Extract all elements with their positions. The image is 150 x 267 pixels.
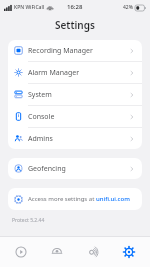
staticText: Alarm Manager [28,68,129,78]
staticText: unifi.ui.com [96,195,130,203]
staticText: Geofencing [28,164,129,174]
staticText: Settings [55,18,95,32]
button[interactable]: Alarm Manager [8,62,142,83]
button[interactable]: Recording Manager [8,40,142,61]
staticText: 16:28 [67,3,83,11]
button[interactable]: Live view [6,237,36,267]
staticText: System [28,90,129,100]
staticText: Access more settings at [28,195,96,203]
staticText: Recording Manager [28,46,129,56]
staticText: KPN WiFiCall [14,4,45,11]
staticText: Admins [28,134,129,144]
staticText: 42% [123,4,133,11]
button[interactable]: Cameras [42,237,72,267]
button[interactable]: Settings [114,237,144,267]
button[interactable]: Access more settings at [8,188,142,210]
staticText: Protect 5.2.44 [12,217,45,224]
button[interactable]: Events [78,237,108,267]
button[interactable]: Admins [8,128,142,149]
button[interactable]: System [8,84,142,105]
button[interactable]: Geofencing [8,158,142,179]
button[interactable]: Console [8,106,142,127]
staticText: Console [28,112,129,122]
